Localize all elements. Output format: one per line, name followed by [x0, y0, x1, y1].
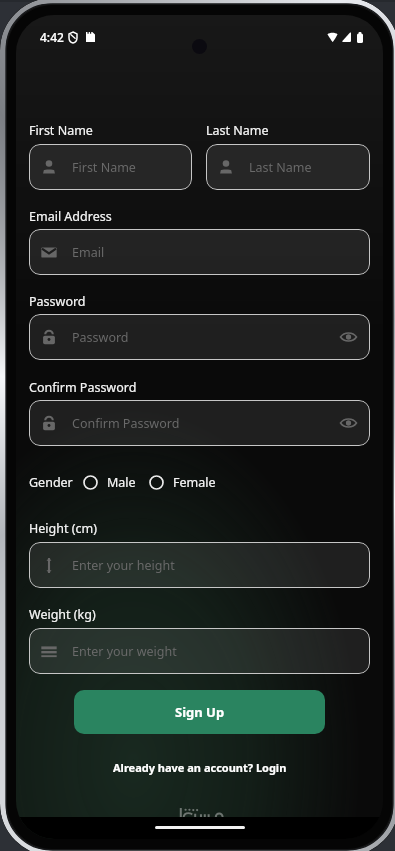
button[interactable]: Sign Up	[74, 690, 325, 734]
button[interactable]: Password	[29, 314, 370, 360]
button[interactable]: Male	[83, 474, 136, 491]
staticText: First Name	[72, 159, 136, 176]
button[interactable]: Confirm Password	[29, 400, 370, 446]
button[interactable]: Last Name	[206, 144, 370, 190]
staticText: Email Address	[29, 208, 112, 225]
button[interactable]: Toggle password visibility	[337, 326, 359, 348]
staticText: Sign Up	[175, 703, 225, 721]
staticText: Confirm Password	[29, 379, 137, 396]
button[interactable]: Female	[149, 474, 216, 491]
staticText: Height (cm)	[29, 520, 97, 537]
button[interactable]: First Name	[29, 144, 192, 190]
staticText: Enter your height	[72, 557, 175, 574]
button[interactable]: Toggle password visibility	[337, 412, 359, 434]
staticText: Gender	[29, 474, 73, 491]
button[interactable]: Email	[29, 229, 370, 275]
button[interactable]: Already have an account? Login	[113, 760, 287, 775]
staticText: First Name	[29, 122, 93, 139]
staticText: Confirm Password	[72, 415, 180, 432]
staticText: Enter your weight	[72, 643, 177, 660]
staticText: Password	[72, 329, 129, 346]
staticText: Password	[29, 293, 86, 310]
button[interactable]: Enter your weight	[29, 628, 370, 674]
staticText: Email	[72, 244, 105, 261]
button[interactable]: Enter your height	[29, 542, 370, 588]
staticText: 4:42	[40, 29, 64, 45]
staticText: Last Name	[249, 159, 312, 176]
staticText: Female	[173, 474, 216, 491]
staticText: Weight (kg)	[29, 606, 96, 623]
staticText: Male	[107, 474, 136, 491]
staticText: Last Name	[206, 122, 269, 139]
